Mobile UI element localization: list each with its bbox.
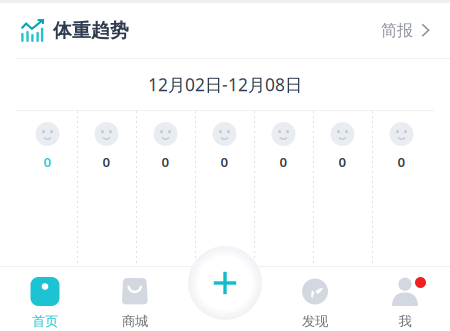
staticText: 我 bbox=[398, 313, 411, 329]
button[interactable]: 商城 bbox=[90, 267, 180, 331]
staticText: 首页 bbox=[32, 313, 58, 329]
staticText: 0 bbox=[102, 153, 110, 171]
staticText: 0 bbox=[161, 153, 169, 171]
staticText: 0 bbox=[397, 153, 405, 171]
button[interactable]: 添加记录 bbox=[188, 246, 262, 320]
staticText: 0 bbox=[43, 153, 51, 171]
staticText: 体重趋势 bbox=[53, 19, 129, 42]
staticText: 0 bbox=[338, 153, 346, 171]
button[interactable]: 我 bbox=[360, 267, 450, 331]
staticText: 0 bbox=[220, 153, 228, 171]
button[interactable]: 简报 bbox=[381, 15, 430, 46]
staticText: 12月02日-12月08日 bbox=[148, 73, 302, 96]
staticText: 简报 bbox=[381, 21, 413, 40]
button[interactable]: 发现 bbox=[270, 267, 360, 331]
staticText: 商城 bbox=[122, 313, 148, 329]
button[interactable]: 首页 bbox=[0, 267, 90, 331]
staticText: 发现 bbox=[302, 313, 328, 329]
staticText: 0 bbox=[279, 153, 287, 171]
